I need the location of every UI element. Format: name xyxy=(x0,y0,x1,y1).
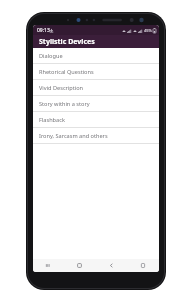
staticText: Dialogue xyxy=(39,52,63,60)
button[interactable]: Story within a story xyxy=(33,96,159,112)
button[interactable]: Stylistic Devices xyxy=(33,35,159,48)
button[interactable]: Dialogue xyxy=(33,48,159,64)
button[interactable]: Recent apps xyxy=(33,259,64,272)
button[interactable]: Rhetorical Questions xyxy=(33,64,159,80)
staticText: Stylistic Devices xyxy=(39,37,95,47)
button[interactable]: Hide keyboard xyxy=(127,259,159,272)
button[interactable]: Back xyxy=(95,259,127,272)
staticText: Irony, Sarcasm and others xyxy=(39,132,108,140)
staticText: Rhetorical Questions xyxy=(39,68,94,76)
button[interactable]: Vivid Description xyxy=(33,80,159,96)
staticText: Flashback xyxy=(39,116,65,124)
staticText: Vivid Description xyxy=(39,84,84,92)
staticText: 45% xyxy=(144,28,152,33)
button[interactable]: Irony, Sarcasm and others xyxy=(33,128,159,144)
button[interactable]: Home xyxy=(64,259,95,272)
staticText: Story within a story xyxy=(39,100,90,108)
staticText: 09:13 xyxy=(37,27,50,34)
button[interactable]: Flashback xyxy=(33,112,159,128)
